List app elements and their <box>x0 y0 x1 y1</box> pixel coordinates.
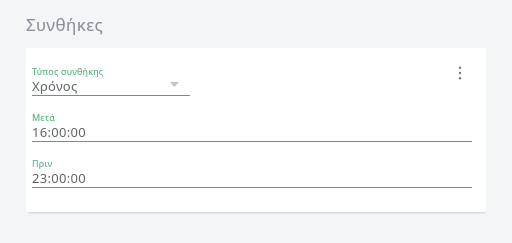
button[interactable]: More options <box>444 57 476 89</box>
staticText: 16:00:00 <box>32 123 86 141</box>
staticText: Χρόνος <box>32 77 78 95</box>
button[interactable]: Τύπος συνθήκης <box>32 62 190 100</box>
button[interactable]: Μετά <box>32 108 472 146</box>
staticText: Συνθήκες <box>26 13 104 36</box>
staticText: Τύπος συνθήκης <box>32 65 104 77</box>
staticText: Μετά <box>32 111 56 123</box>
button[interactable]: Πριν <box>32 154 472 192</box>
staticText: Πριν <box>32 157 53 169</box>
staticText: 23:00:00 <box>32 169 86 187</box>
